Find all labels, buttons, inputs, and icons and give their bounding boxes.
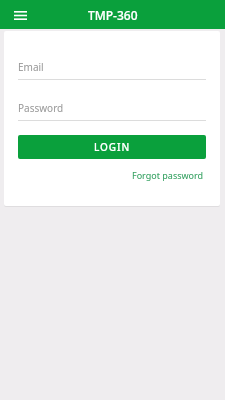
staticText: LOGIN (94, 140, 131, 154)
button[interactable]: LOGIN (18, 135, 206, 159)
button[interactable]: Email (18, 60, 206, 80)
staticText: Forgot password (132, 169, 204, 181)
button[interactable]: Open navigation menu (8, 3, 32, 27)
button[interactable]: Forgot password (130, 167, 206, 183)
staticText: Password (18, 101, 64, 115)
staticText: Email (18, 60, 44, 74)
staticText: TMP-360 (88, 7, 138, 23)
button[interactable]: Password (18, 101, 206, 121)
